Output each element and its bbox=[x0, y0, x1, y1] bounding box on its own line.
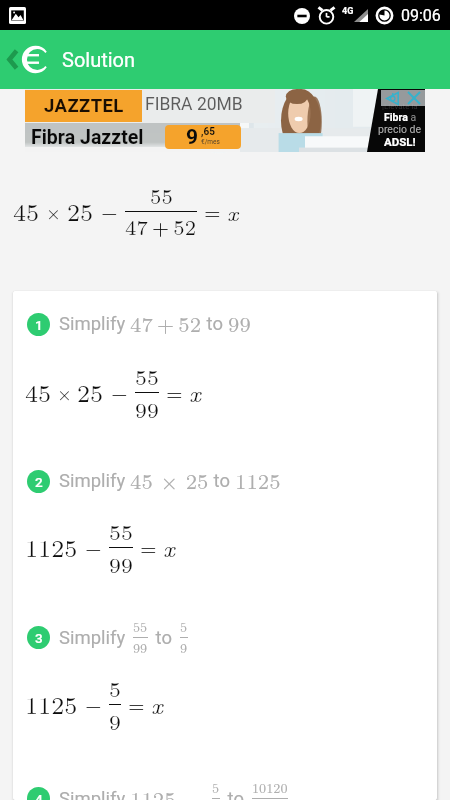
staticText: x bbox=[151, 689, 163, 720]
staticText: Simplify bbox=[59, 788, 130, 800]
staticText: = bbox=[140, 534, 157, 561]
staticText: 99 bbox=[133, 639, 148, 657]
staticText: 47 + 52 bbox=[130, 310, 202, 338]
staticText: = bbox=[204, 198, 221, 225]
staticText: 25 bbox=[67, 195, 94, 228]
staticText: 45 bbox=[25, 376, 52, 409]
staticText: FIBRA 20MB bbox=[145, 94, 243, 115]
staticText: 3 bbox=[35, 630, 43, 646]
staticText: to bbox=[202, 313, 228, 335]
staticText: − bbox=[85, 534, 102, 561]
staticText: 4G bbox=[342, 6, 354, 17]
staticText: ¡Llévate la bbox=[382, 102, 418, 111]
staticText: 5 bbox=[109, 673, 121, 703]
staticText: JAZZTEL bbox=[44, 95, 124, 117]
staticText: 55 bbox=[150, 182, 173, 210]
staticText: to bbox=[209, 470, 235, 492]
staticText: ,65 bbox=[201, 126, 215, 138]
staticText: Fibra Jazztel bbox=[31, 126, 144, 149]
staticText: × bbox=[57, 381, 72, 405]
staticText: − bbox=[101, 198, 118, 225]
staticText: ADSL! bbox=[384, 135, 416, 148]
staticText: to bbox=[151, 627, 177, 649]
staticText: 55 bbox=[135, 361, 159, 391]
staticText: 9 bbox=[180, 639, 188, 657]
staticText: 47 + 52 bbox=[125, 213, 197, 241]
staticText: 45 × 25 bbox=[130, 467, 209, 495]
staticText: x bbox=[189, 377, 201, 408]
staticText: 99 bbox=[109, 549, 133, 579]
staticText: precio de bbox=[378, 123, 422, 135]
button[interactable]: Close ad bbox=[403, 90, 425, 106]
staticText: = bbox=[166, 379, 183, 406]
staticText: 09:06 bbox=[401, 6, 441, 25]
staticText: × bbox=[46, 200, 61, 224]
staticText: €/mes bbox=[201, 138, 220, 146]
staticText: 25 bbox=[77, 376, 104, 409]
staticText: x bbox=[163, 532, 175, 563]
staticText: − bbox=[111, 379, 128, 406]
staticText: Simplify bbox=[59, 313, 130, 335]
staticText: 9 bbox=[109, 706, 121, 736]
button[interactable]: Advertisement bbox=[25, 89, 425, 152]
staticText: 4 bbox=[35, 791, 43, 800]
staticText: 10120 bbox=[252, 779, 288, 797]
staticText: a bbox=[408, 111, 417, 123]
staticText: Simplify bbox=[59, 470, 130, 492]
staticText: 45 bbox=[13, 195, 40, 228]
staticText: Simplify bbox=[59, 627, 130, 649]
staticText: 1125 bbox=[25, 531, 78, 564]
staticText: 99 bbox=[135, 394, 159, 424]
staticText: 2 bbox=[35, 474, 43, 490]
button[interactable]: 1 bbox=[13, 291, 437, 800]
staticText: 99 bbox=[228, 310, 251, 338]
staticText: 55 bbox=[109, 516, 133, 546]
staticText: 1 bbox=[35, 317, 43, 333]
staticText: x bbox=[227, 197, 239, 227]
button[interactable]: Back bbox=[0, 30, 58, 89]
staticText: 1125 − bbox=[130, 785, 209, 800]
staticText: Solution bbox=[62, 48, 136, 71]
staticText: 9 bbox=[186, 125, 199, 149]
staticText: 55 bbox=[133, 618, 148, 636]
staticText: to bbox=[223, 788, 249, 800]
staticText: 1125 bbox=[235, 467, 281, 495]
staticText: = bbox=[128, 691, 145, 718]
staticText: Fibra bbox=[384, 111, 408, 123]
staticText: 5 bbox=[180, 618, 188, 636]
staticText: − bbox=[85, 691, 102, 718]
staticText: 5 bbox=[212, 779, 220, 797]
staticText: 1125 bbox=[25, 688, 78, 721]
